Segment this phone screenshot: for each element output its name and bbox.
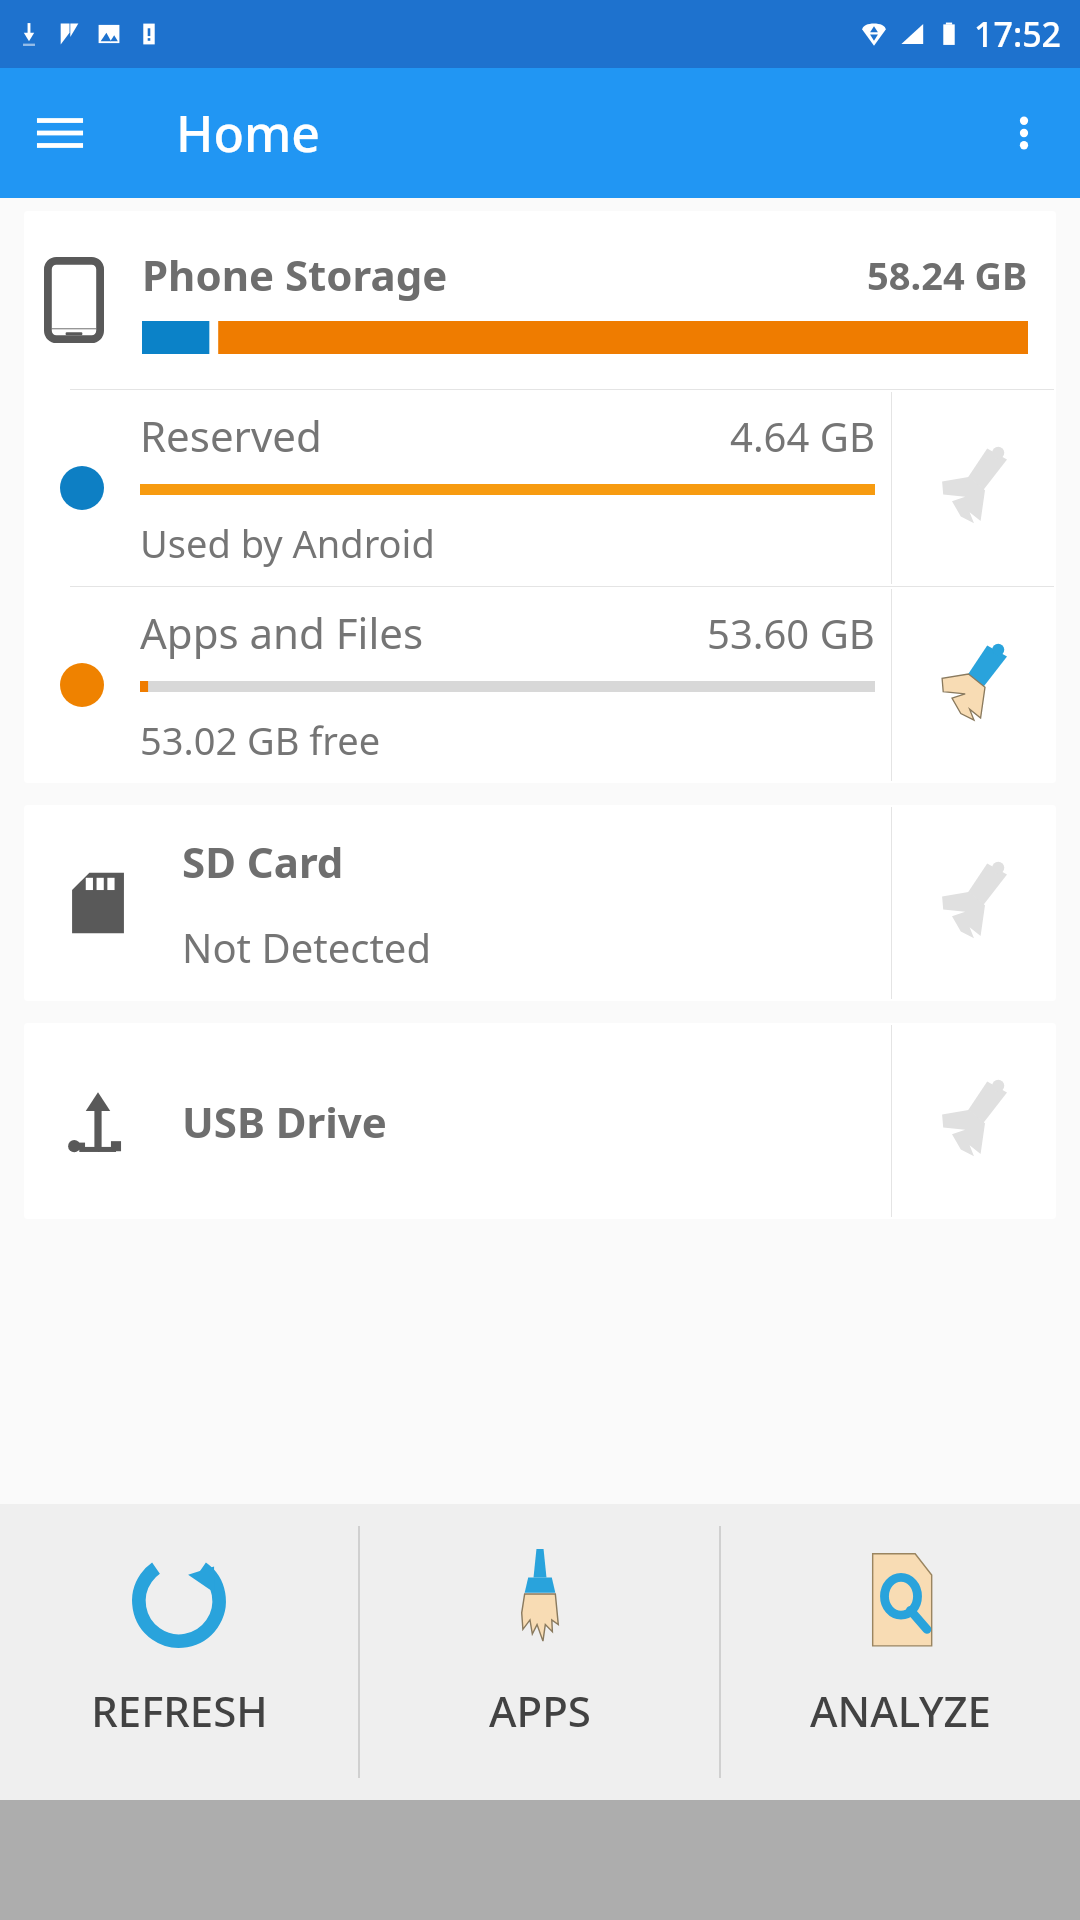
button[interactable]: Apps and Files <box>24 587 1056 783</box>
staticText: 58.24 GB <box>867 249 1028 301</box>
button[interactable]: Clean Apps and Files <box>892 587 1056 783</box>
staticText: 4.64 GB <box>730 409 875 463</box>
staticText: REFRESH <box>91 1682 268 1739</box>
staticText: ANALYZE <box>810 1682 991 1739</box>
button[interactable]: USB Drive <box>24 1023 1056 1219</box>
button[interactable]: REFRESH <box>0 1504 358 1800</box>
staticText: SD Card <box>182 833 344 890</box>
staticText: Apps and Files <box>140 604 707 661</box>
staticText: 53.02 GB free <box>140 714 381 766</box>
staticText: Reserved <box>140 407 730 464</box>
button[interactable]: APPS <box>360 1504 719 1800</box>
button[interactable]: More options <box>988 97 1060 169</box>
button[interactable]: Phone Storage <box>24 211 1056 783</box>
button[interactable]: Clean USB Drive <box>892 1023 1056 1219</box>
button[interactable]: Clean unavailable <box>892 390 1056 586</box>
staticText: Home <box>176 99 320 167</box>
button[interactable]: ANALYZE <box>721 1504 1080 1800</box>
staticText: 53.60 GB <box>707 606 875 660</box>
button[interactable]: SD Card <box>24 805 1056 1001</box>
button[interactable]: Open navigation menu <box>24 97 96 169</box>
staticText: APPS <box>489 1682 591 1739</box>
button[interactable]: Clean SD Card <box>892 805 1056 1001</box>
staticText: Not Detected <box>182 920 431 974</box>
staticText: Used by Android <box>140 517 435 569</box>
staticText: 17:52 <box>974 11 1062 57</box>
staticText: Phone Storage <box>142 246 867 303</box>
button[interactable]: Reserved <box>24 390 1056 586</box>
staticText: USB Drive <box>182 1093 387 1150</box>
